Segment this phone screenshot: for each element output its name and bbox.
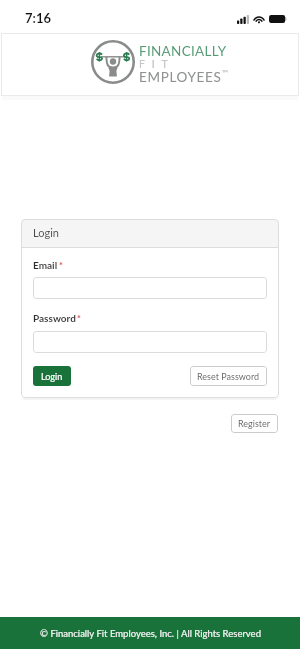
- staticText: 7:16: [25, 10, 51, 26]
- staticText: *: [59, 260, 63, 271]
- staticText: Login: [41, 371, 63, 382]
- staticText: EMPLOYEES: [139, 69, 222, 85]
- staticText: © Financially Fit Employees, Inc. | All …: [40, 628, 261, 639]
- button[interactable]: Reset Password: [190, 366, 267, 386]
- button[interactable]: Login: [33, 366, 71, 386]
- button[interactable]: Register: [231, 414, 278, 433]
- staticText: Register: [238, 418, 271, 429]
- staticText: Email: [33, 259, 58, 271]
- staticText: *: [77, 313, 81, 324]
- staticText: ™: [222, 68, 229, 78]
- staticText: FINANCIALLY: [139, 43, 227, 59]
- staticText: Login: [33, 226, 59, 239]
- button[interactable]: [33, 331, 267, 353]
- staticText: Reset Password: [197, 371, 260, 382]
- button[interactable]: [33, 277, 267, 299]
- staticText: Password: [33, 312, 76, 324]
- staticText: FIT: [139, 58, 175, 71]
